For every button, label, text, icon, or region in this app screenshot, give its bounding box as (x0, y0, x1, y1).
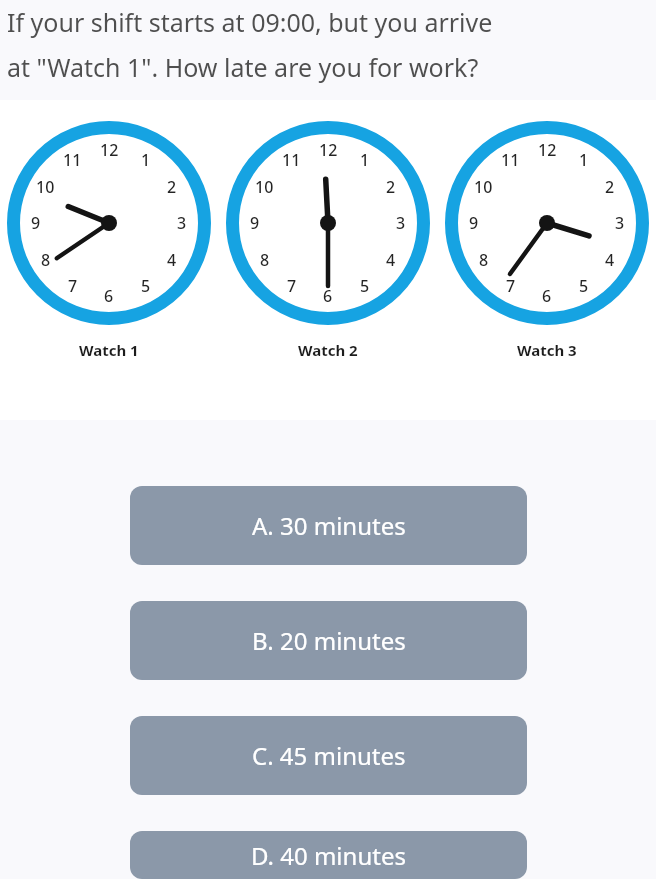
staticText: 2 (386, 176, 396, 198)
staticText: D. 40 minutes (251, 839, 406, 872)
staticText: 10 (36, 176, 55, 198)
staticText: 1 (360, 149, 370, 171)
staticText: 2 (167, 176, 177, 198)
staticText: 8 (479, 249, 489, 271)
staticText: 5 (141, 275, 151, 297)
staticText: 6 (323, 285, 333, 307)
button[interactable]: B. 20 minutes (130, 601, 527, 680)
staticText: Watch 3 (517, 340, 577, 360)
staticText: 7 (287, 275, 297, 297)
staticText: Watch 1 (79, 340, 139, 360)
staticText: If your shift starts at 09:00, but you a… (7, 5, 493, 39)
staticText: 8 (260, 249, 270, 271)
staticText: A. 30 minutes (252, 509, 406, 542)
staticText: 12 (100, 139, 119, 161)
staticText: 11 (63, 149, 82, 171)
staticText: 9 (31, 212, 41, 234)
staticText: 10 (474, 176, 493, 198)
staticText: 12 (319, 139, 338, 161)
staticText: 9 (469, 212, 479, 234)
staticText: 11 (282, 149, 301, 171)
staticText: 5 (360, 275, 370, 297)
staticText: C. 45 minutes (252, 739, 406, 772)
staticText: 4 (386, 249, 396, 271)
staticText: 6 (104, 285, 114, 307)
staticText: 3 (396, 212, 406, 234)
staticText: B. 20 minutes (252, 624, 406, 657)
staticText: 1 (141, 149, 151, 171)
staticText: 3 (177, 212, 187, 234)
staticText: 11 (501, 149, 520, 171)
staticText: Watch 2 (298, 340, 358, 360)
button[interactable]: A. 30 minutes (130, 486, 527, 565)
staticText: 6 (542, 285, 552, 307)
staticText: 5 (579, 275, 589, 297)
staticText: 12 (538, 139, 557, 161)
staticText: 4 (167, 249, 177, 271)
staticText: 4 (605, 249, 615, 271)
staticText: 7 (68, 275, 78, 297)
staticText: at "Watch 1". How late are you for work? (7, 50, 479, 84)
staticText: 1 (579, 149, 589, 171)
staticText: 3 (615, 212, 625, 234)
button[interactable]: D. 40 minutes (130, 831, 527, 879)
button[interactable]: C. 45 minutes (130, 716, 527, 795)
staticText: 2 (605, 176, 615, 198)
staticText: 10 (255, 176, 274, 198)
staticText: 8 (41, 249, 51, 271)
staticText: 9 (250, 212, 260, 234)
staticText: 7 (506, 275, 516, 297)
